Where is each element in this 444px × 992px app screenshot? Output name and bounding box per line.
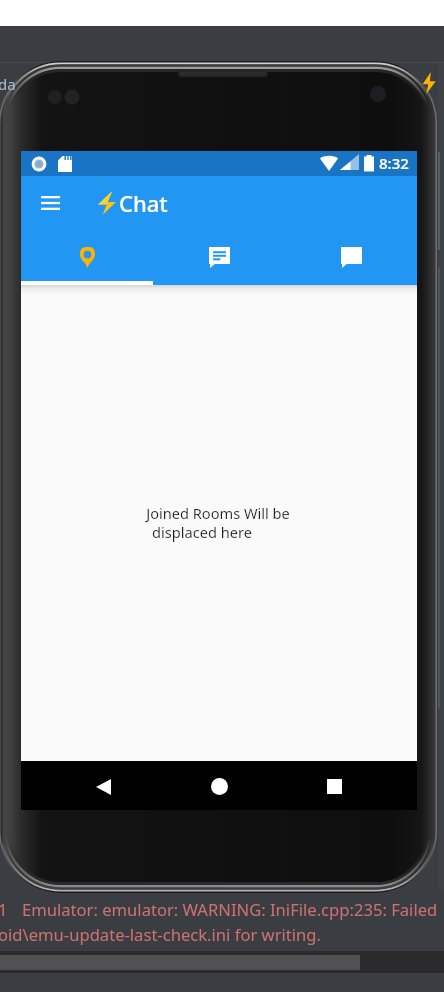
button[interactable]: Messages [153,229,285,281]
staticText: Emulator: emulator: WARNING: IniFile.cpp… [22,898,438,921]
staticText: oid\emu-update-last-check.ini for writin… [0,923,321,946]
staticText: da [0,74,16,94]
staticText: 8:32 [379,153,409,173]
staticText: Joined Rooms Will be [146,503,290,523]
button[interactable]: Chats [285,229,417,281]
button[interactable]: Back [79,762,128,811]
staticText: displaced here [152,522,252,542]
staticText: Chat [119,188,168,218]
staticText: 1 [0,898,8,921]
button[interactable]: Open navigation drawer [28,180,73,225]
button[interactable]: Rooms [21,229,153,281]
button[interactable]: Recent apps [310,762,359,811]
button[interactable]: Home [195,762,244,811]
